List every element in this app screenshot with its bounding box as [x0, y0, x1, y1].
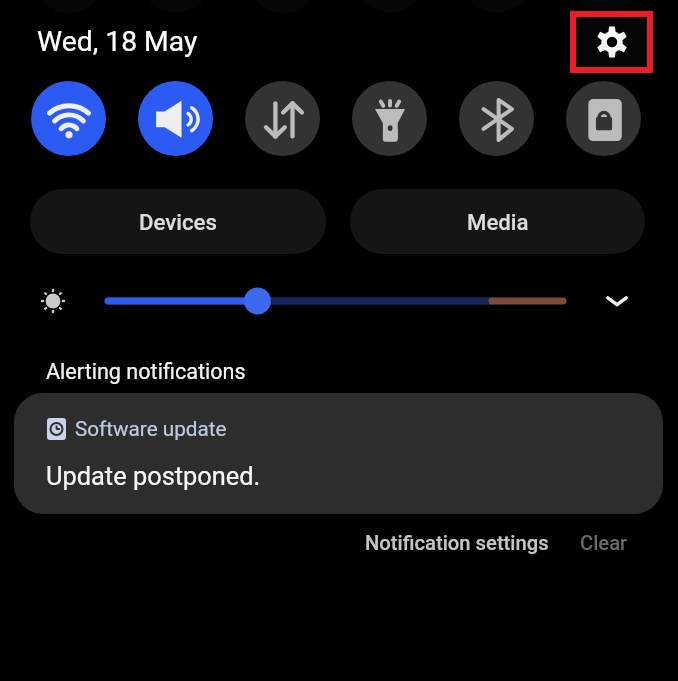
- staticText: Wed, 18 May: [37, 25, 198, 58]
- staticText: Alerting notifications: [46, 359, 246, 384]
- button[interactable]: Devices: [30, 189, 326, 254]
- button[interactable]: Software update: [14, 393, 663, 514]
- button[interactable]: Media: [350, 189, 645, 254]
- button[interactable]: Device controls: [566, 81, 641, 156]
- staticText: Clear: [580, 531, 628, 555]
- button[interactable]: Bluetooth: [459, 81, 534, 156]
- button[interactable]: Brightness: [36, 284, 70, 318]
- button[interactable]: Expand: [599, 283, 635, 319]
- button[interactable]: Settings: [576, 17, 647, 67]
- button[interactable]: Clear: [572, 525, 636, 561]
- button[interactable]: Mobile data: [245, 81, 320, 156]
- button[interactable]: Notification settings: [357, 525, 557, 561]
- button[interactable]: Wi-Fi: [31, 81, 106, 156]
- button[interactable]: Sound: [138, 81, 213, 156]
- staticText: Media: [467, 209, 529, 235]
- button[interactable]: Brightness slider: [100, 285, 572, 317]
- staticText: Update postponed.: [46, 461, 261, 491]
- staticText: Devices: [139, 209, 217, 235]
- staticText: Notification settings: [365, 531, 549, 555]
- staticText: Software update: [75, 417, 227, 441]
- button[interactable]: Flashlight: [352, 81, 427, 156]
